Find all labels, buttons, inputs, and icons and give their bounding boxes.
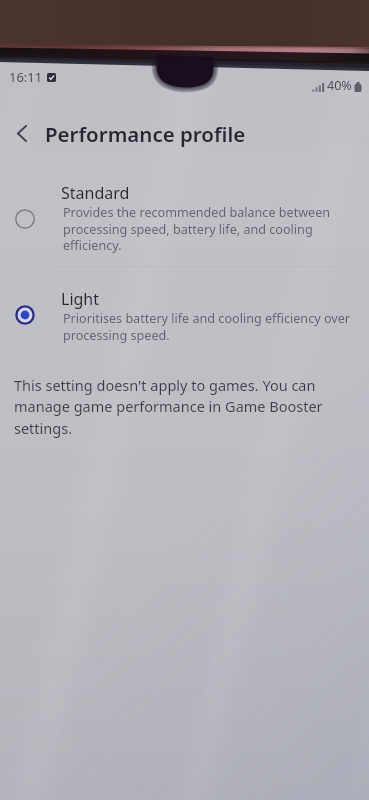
button[interactable]: Back [1,112,43,154]
staticText: 16:11 [9,68,43,86]
staticText: 40% [327,77,352,94]
button[interactable] [0,278,369,364]
staticText: Prioritises battery life and cooling eff… [63,310,350,343]
staticText: Provides the recommended balance between… [63,204,331,253]
staticText: Light [61,288,100,310]
staticText: This setting doesn't apply to games. You… [14,375,323,439]
staticText: Performance profile [45,120,246,148]
staticText: Standard [61,182,130,204]
button[interactable] [0,172,369,258]
